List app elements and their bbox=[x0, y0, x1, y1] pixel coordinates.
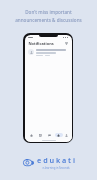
staticText: announcements & discussions bbox=[15, 17, 82, 23]
button[interactable]: Notifications bbox=[54, 131, 63, 139]
staticText: Notifications bbox=[28, 41, 54, 46]
staticText: e-learning in Seconds bbox=[42, 166, 70, 170]
button[interactable]: Home bbox=[27, 131, 36, 139]
button[interactable]: Filter bbox=[64, 41, 69, 46]
button[interactable] bbox=[25, 47, 72, 58]
button[interactable]: Chat bbox=[45, 131, 54, 139]
button[interactable]: Profile bbox=[63, 131, 70, 139]
staticText: e d u k a t i bbox=[37, 155, 75, 165]
staticText: Don't miss important bbox=[25, 9, 72, 15]
button[interactable]: e d u k a t i bbox=[19, 153, 79, 172]
button[interactable]: Courses bbox=[36, 131, 45, 139]
